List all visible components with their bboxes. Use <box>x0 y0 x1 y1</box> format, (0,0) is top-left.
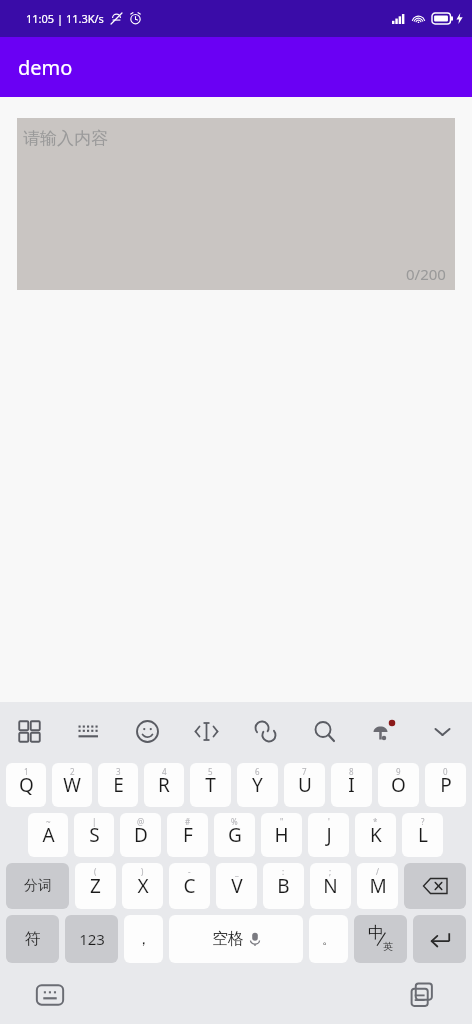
button[interactable]: G <box>214 813 255 857</box>
staticText: F <box>183 822 193 848</box>
staticText: | <box>92 816 97 827</box>
staticText: 5 <box>208 766 213 777</box>
staticText: M <box>369 873 387 899</box>
staticText: 空格 <box>212 929 244 949</box>
button[interactable]: Clipboard <box>405 978 439 1012</box>
button[interactable]: K <box>355 813 396 857</box>
button[interactable]: Q <box>6 763 46 807</box>
staticText: A <box>42 822 55 848</box>
staticText: 1 <box>24 766 29 777</box>
staticText: Z <box>90 873 101 899</box>
staticText: 中 <box>368 923 384 943</box>
button[interactable]: P <box>425 763 466 807</box>
staticText: V <box>231 873 243 899</box>
staticText: 。 <box>322 931 335 947</box>
staticText: C <box>183 873 196 899</box>
staticText: X <box>137 873 149 899</box>
button[interactable]: A <box>28 813 68 857</box>
staticText: 6 <box>255 766 260 777</box>
staticText: ~ <box>46 816 51 827</box>
button[interactable]: J <box>308 813 349 857</box>
staticText: U <box>298 772 312 798</box>
staticText: O <box>391 772 406 798</box>
button[interactable]: Keyboard layout <box>59 702 118 760</box>
button[interactable]: I <box>331 763 372 807</box>
staticText: ' <box>328 816 330 827</box>
staticText: ; <box>329 866 332 877</box>
staticText: - <box>188 866 191 877</box>
button[interactable]: S <box>74 813 114 857</box>
button[interactable]: U <box>284 763 325 807</box>
staticText: 请输入内容 <box>23 128 108 149</box>
button[interactable]: B <box>263 863 304 909</box>
button[interactable]: M <box>357 863 398 909</box>
button[interactable]: 123 <box>65 915 118 963</box>
button[interactable]: Cursor move <box>177 702 236 760</box>
staticText: 123 <box>79 929 105 949</box>
button[interactable]: X <box>122 863 163 909</box>
button[interactable]: L <box>402 813 443 857</box>
button[interactable]: ， <box>124 915 163 963</box>
button[interactable]: Backspace <box>404 863 466 909</box>
staticText: R <box>158 772 170 798</box>
staticText: " <box>280 816 284 827</box>
staticText: @ <box>137 816 145 827</box>
staticText: demo <box>18 54 73 81</box>
button[interactable]: Apps <box>0 702 59 760</box>
button[interactable]: 请输入内容 <box>17 118 455 290</box>
staticText: L <box>418 822 428 848</box>
staticText: G <box>228 822 242 848</box>
button[interactable]: N <box>310 863 351 909</box>
staticText: H <box>274 822 289 848</box>
staticText: 7 <box>302 766 307 777</box>
staticText: 符 <box>25 929 41 949</box>
staticText: _ <box>235 866 239 877</box>
button[interactable]: Z <box>75 863 116 909</box>
button[interactable]: 空格 <box>169 915 303 963</box>
button[interactable]: O <box>378 763 419 807</box>
staticText: ( <box>94 866 97 877</box>
button[interactable]: 中 <box>354 915 407 963</box>
button[interactable]: V <box>216 863 257 909</box>
button[interactable]: R <box>144 763 184 807</box>
staticText: % <box>231 816 238 827</box>
staticText: B <box>277 873 290 899</box>
button[interactable]: W <box>52 763 92 807</box>
button[interactable]: T <box>190 763 231 807</box>
staticText: E <box>113 772 124 798</box>
button[interactable]: Enter <box>413 915 466 963</box>
staticText: 0 <box>443 766 448 777</box>
button[interactable]: Clipboard link <box>236 702 295 760</box>
staticText: 8 <box>349 766 354 777</box>
button[interactable]: Switch keyboard <box>33 978 67 1012</box>
button[interactable]: Hide keyboard <box>413 702 472 760</box>
staticText: 3 <box>116 766 121 777</box>
staticText: W <box>63 772 81 798</box>
staticText: D <box>134 822 148 848</box>
staticText: 分词 <box>24 877 52 895</box>
button[interactable]: Emoji <box>118 702 177 760</box>
staticText: 4 <box>162 766 167 777</box>
button[interactable]: Y <box>237 763 278 807</box>
staticText: ? <box>421 816 425 827</box>
staticText: N <box>323 873 338 899</box>
button[interactable]: F <box>167 813 208 857</box>
staticText: 9 <box>396 766 401 777</box>
staticText: 英 <box>383 940 393 953</box>
button[interactable]: Theme <box>354 702 413 760</box>
staticText: J <box>326 822 332 848</box>
staticText: # <box>185 816 191 827</box>
button[interactable]: C <box>169 863 210 909</box>
button[interactable]: 符 <box>6 915 59 963</box>
button[interactable]: 分词 <box>6 863 69 909</box>
staticText: T <box>205 772 216 798</box>
staticText: S <box>89 822 100 848</box>
staticText: 0/200 <box>406 264 446 284</box>
staticText: 11:05 | 11.3K/s <box>26 11 104 26</box>
button[interactable]: 。 <box>309 915 348 963</box>
button[interactable]: H <box>261 813 302 857</box>
button[interactable]: Search <box>295 702 354 760</box>
staticText: ， <box>136 930 151 949</box>
button[interactable]: D <box>120 813 161 857</box>
button[interactable]: E <box>98 763 138 807</box>
